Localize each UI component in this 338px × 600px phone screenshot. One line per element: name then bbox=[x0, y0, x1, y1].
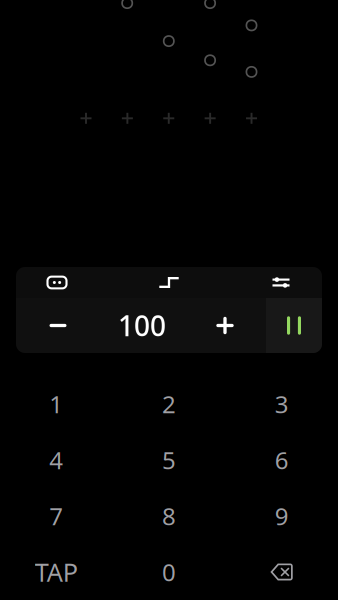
button[interactable]: Increase tempo bbox=[184, 298, 266, 353]
button[interactable]: 1 bbox=[0, 376, 113, 432]
button[interactable]: Delete bbox=[225, 544, 338, 600]
staticText: 6 bbox=[275, 444, 289, 476]
button[interactable]: 6 bbox=[225, 432, 338, 488]
staticText: 2 bbox=[162, 388, 176, 420]
button[interactable]: Pause bbox=[266, 298, 322, 353]
staticText: 4 bbox=[49, 444, 63, 476]
button[interactable]: 9 bbox=[225, 488, 338, 544]
button[interactable]: Settings bbox=[240, 267, 322, 298]
staticText: TAP bbox=[35, 555, 78, 589]
button[interactable]: 3 bbox=[225, 376, 338, 432]
staticText: 8 bbox=[162, 500, 176, 532]
button[interactable]: Subdivision bbox=[128, 267, 210, 298]
button[interactable]: 7 bbox=[0, 488, 113, 544]
staticText: 0 bbox=[162, 556, 176, 588]
button[interactable]: 8 bbox=[113, 488, 225, 544]
button[interactable]: Decrease tempo bbox=[16, 298, 100, 353]
staticText: 9 bbox=[275, 500, 289, 532]
staticText: 3 bbox=[275, 388, 289, 420]
staticText: 100 bbox=[118, 307, 166, 344]
staticText: 1 bbox=[49, 388, 63, 420]
button[interactable]: Sound bbox=[16, 267, 98, 298]
staticText: 5 bbox=[162, 444, 176, 476]
staticText: 7 bbox=[49, 500, 63, 532]
button[interactable]: 0 bbox=[113, 544, 225, 600]
button[interactable]: 5 bbox=[113, 432, 225, 488]
button[interactable]: TAP bbox=[0, 544, 113, 600]
button[interactable]: 4 bbox=[0, 432, 113, 488]
button[interactable]: 2 bbox=[113, 376, 225, 432]
